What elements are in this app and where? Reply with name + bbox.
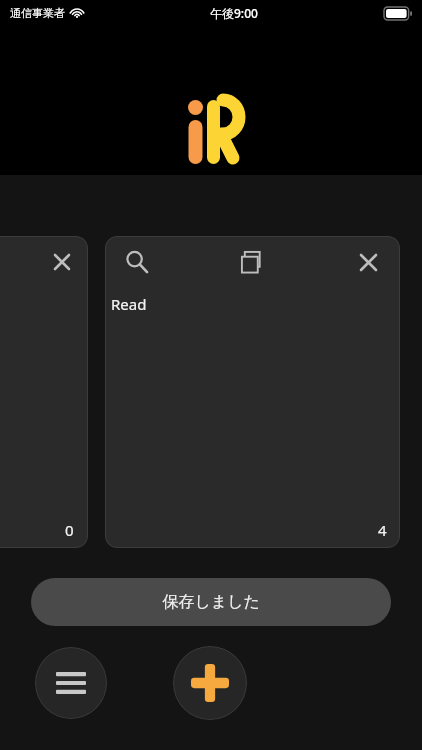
- staticText: 0: [65, 520, 74, 540]
- button[interactable]: Close: [44, 244, 80, 280]
- button[interactable]: 保存しました: [31, 578, 391, 626]
- staticText: 通信事業者: [10, 6, 65, 20]
- button[interactable]: Search: [105, 236, 400, 548]
- staticText: 保存しました: [162, 592, 260, 612]
- button[interactable]: Duplicate: [232, 242, 272, 282]
- button[interactable]: Close: [348, 242, 388, 282]
- staticText: Read: [111, 294, 147, 314]
- staticText: 4: [378, 520, 387, 540]
- button[interactable]: Close: [0, 236, 88, 548]
- button[interactable]: Add: [173, 646, 247, 720]
- button[interactable]: Menu: [35, 647, 107, 719]
- staticText: 午後9:00: [210, 5, 258, 21]
- button[interactable]: Search: [117, 242, 157, 282]
